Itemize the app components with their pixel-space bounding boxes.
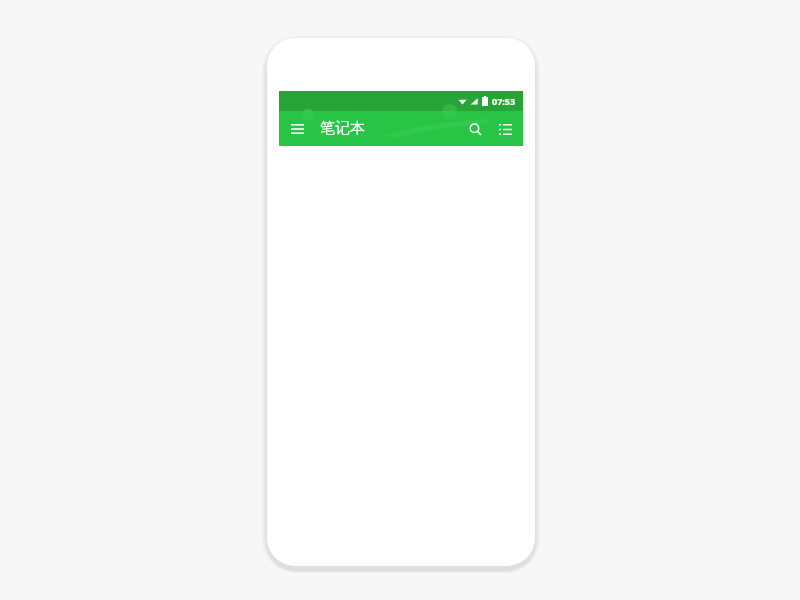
button[interactable]: Search — [462, 116, 488, 142]
staticText: 07:53 — [492, 95, 516, 107]
staticText: 笔记本 — [320, 119, 365, 138]
button[interactable]: Change list view — [492, 116, 518, 142]
button[interactable]: Open navigation menu — [284, 116, 310, 142]
